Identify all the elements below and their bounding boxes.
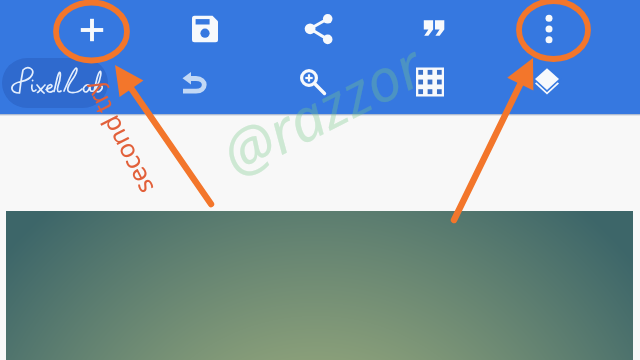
button[interactable]: PixelLab <box>2 58 108 108</box>
button[interactable]: Save <box>183 7 227 51</box>
button[interactable]: Text <box>412 6 456 50</box>
button[interactable]: More options <box>527 7 571 51</box>
staticText: @razzor <box>208 24 436 194</box>
button[interactable]: Share <box>297 7 341 51</box>
button[interactable]: Grid <box>408 60 452 104</box>
button[interactable]: Layers <box>525 57 569 101</box>
staticText: second try <box>74 75 160 200</box>
button[interactable]: Add <box>70 8 114 52</box>
button[interactable]: Undo <box>172 61 216 105</box>
button[interactable]: Zoom in <box>287 56 331 100</box>
